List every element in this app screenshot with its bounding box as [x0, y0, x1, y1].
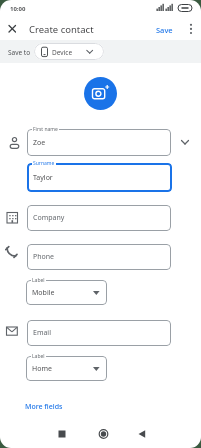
button[interactable]: Zoe [27, 129, 171, 156]
staticText: Label [32, 277, 45, 284]
button[interactable] [96, 427, 110, 441]
staticText: First name [33, 126, 58, 133]
button[interactable]: Save [156, 25, 173, 35]
staticText: 10:00 [10, 5, 26, 13]
staticText: Company [33, 213, 65, 223]
staticText: Email [33, 328, 51, 338]
button[interactable] [134, 427, 148, 441]
staticText: Phone [33, 252, 55, 262]
button[interactable]: Email [27, 320, 171, 346]
button[interactable] [185, 22, 197, 34]
button[interactable] [84, 77, 117, 110]
staticText: Label [32, 353, 45, 360]
button[interactable]: Phone [27, 244, 171, 270]
button[interactable] [55, 427, 69, 441]
button[interactable]: Home [26, 356, 107, 381]
button[interactable]: Taylor [27, 163, 172, 192]
button[interactable]: Mobile [26, 280, 107, 305]
staticText: Device [52, 48, 73, 57]
staticText: Surname [33, 160, 55, 167]
staticText: Zoe [33, 138, 46, 148]
button[interactable]: Company [27, 205, 171, 231]
staticText: Create contact [29, 23, 94, 36]
staticText: Home [32, 364, 52, 374]
staticText: Taylor [33, 173, 53, 183]
staticText: Save to [8, 48, 31, 57]
button[interactable] [5, 22, 19, 36]
staticText: Mobile [32, 288, 55, 298]
button[interactable]: More fields [25, 402, 63, 412]
button[interactable] [34, 43, 104, 60]
